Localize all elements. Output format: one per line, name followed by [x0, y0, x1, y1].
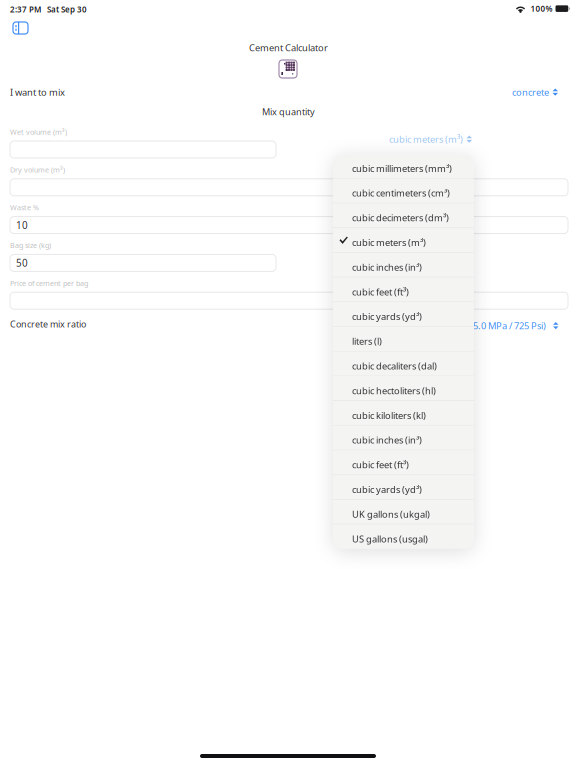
staticText: Concrete mix ratio [10, 318, 86, 330]
button[interactable]: cubic decaliters (dal) [333, 352, 474, 376]
staticText: cubic inches (in³) [352, 434, 422, 446]
button[interactable]: UK gallons (ukgal) [333, 500, 474, 524]
staticText: cubic hectoliters (hl) [352, 384, 436, 397]
staticText: cubic yards (yd³) [352, 483, 422, 496]
staticText: 100% [530, 3, 552, 14]
staticText: Sat Sep 30 [47, 4, 87, 15]
staticText: UK gallons (ukgal) [352, 508, 430, 520]
staticText: Price of cement per bag [10, 278, 88, 288]
staticText: Waste % [10, 203, 39, 212]
button[interactable]: 1 : 2 : 4 (C20 / 5.0 MPa / 725 Psi) [416, 319, 559, 332]
staticText: 1 : 2 : 4 (C20 / 5.0 MPa / 725 Psi) [416, 319, 546, 332]
staticText: cubic kiloliters (kl) [352, 409, 426, 421]
button[interactable]: US gallons (usgal) [333, 524, 474, 549]
staticText: Cement Calculator [249, 41, 328, 54]
staticText: I want to mix [10, 86, 65, 98]
staticText: Wet volume (m³) [10, 127, 67, 137]
button[interactable]: cubic inches (in³) [333, 426, 474, 450]
button[interactable]: cubic feet (ft³) [333, 277, 474, 302]
button[interactable]: concrete [512, 86, 558, 98]
staticText: 50 [16, 256, 28, 270]
staticText: cubic millimeters (mm³) [352, 162, 452, 174]
button[interactable]: cubic yards (yd³) [333, 302, 474, 326]
staticText: concrete [512, 86, 549, 98]
staticText: cubic decaliters (dal) [352, 360, 437, 372]
button[interactable]: cubic meters (m³) [389, 133, 472, 145]
button[interactable]: Toggle Sidebar [13, 22, 28, 34]
button[interactable]: cubic meters (m³) [333, 228, 474, 252]
button[interactable]: cubic yards (yd³) [333, 475, 474, 499]
staticText: US gallons (usgal) [352, 533, 428, 545]
staticText: cubic meters (m³) [352, 236, 426, 249]
staticText: 10 [16, 218, 28, 232]
button[interactable]: cubic centimeters (cm³) [333, 179, 474, 203]
staticText: cubic yards (yd³) [352, 310, 422, 323]
staticText: cubic decimeters (dm³) [352, 211, 449, 224]
button[interactable]: cubic feet (ft³) [333, 450, 474, 474]
staticText: cubic centimeters (cm³) [352, 187, 450, 199]
button[interactable]: cubic millimeters (mm³) [333, 154, 474, 178]
staticText: Bag size (kg) [10, 240, 51, 250]
button[interactable]: cubic hectoliters (hl) [333, 376, 474, 400]
staticText: liters (l) [352, 335, 382, 347]
staticText: Dry volume (m³) [10, 165, 65, 175]
button[interactable]: cubic kiloliters (kl) [333, 401, 474, 425]
staticText: cubic meters (m³) [389, 133, 463, 145]
staticText: cubic feet (ft³) [352, 458, 409, 471]
staticText: cubic inches (in³) [352, 261, 422, 273]
button[interactable]: cubic decimeters (dm³) [333, 203, 474, 227]
staticText: cubic feet (ft³) [352, 286, 409, 298]
staticText: Mix quantity [262, 105, 315, 118]
button[interactable]: cubic inches (in³) [333, 253, 474, 277]
button[interactable]: liters (l) [333, 327, 474, 351]
staticText: 2:37 PM [10, 4, 41, 15]
